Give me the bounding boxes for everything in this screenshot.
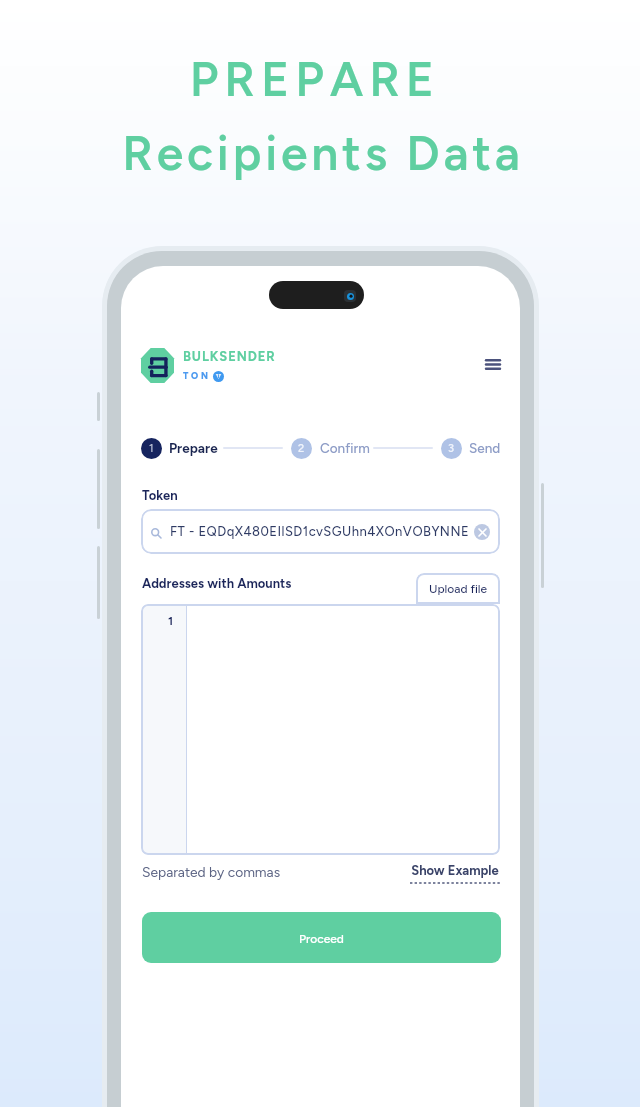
staticText: 1: [149, 442, 154, 455]
staticText: 3: [448, 442, 455, 455]
staticText: Send: [469, 440, 501, 456]
staticText: 2: [298, 442, 305, 455]
button[interactable]: Show Example: [410, 863, 500, 884]
staticText: Addresses with Amounts: [142, 576, 292, 592]
button[interactable]: FT - EQDqX480EIlSD1cvSGUhn4XOnVOBYNNE: [141, 509, 500, 554]
staticText: PREPARE: [0, 50, 635, 108]
button[interactable]: Upload file: [416, 573, 500, 604]
staticText: Recipients Data: [3, 124, 640, 182]
staticText: Upload file: [429, 582, 488, 596]
button[interactable]: 1: [141, 438, 162, 459]
staticText: FT - EQDqX480EIlSD1cvSGUhn4XOnVOBYNNE: [170, 524, 470, 540]
staticText: Separated by commas: [142, 864, 281, 881]
button[interactable]: 1: [141, 604, 500, 855]
button[interactable]: Clear: [474, 524, 490, 540]
button[interactable]: Menu: [472, 347, 514, 381]
staticText: 1: [168, 614, 174, 628]
staticText: TON: [183, 370, 211, 381]
staticText: BULKSENDER: [183, 349, 276, 365]
staticText: Token: [142, 488, 178, 504]
button[interactable]: 2: [291, 438, 312, 459]
button[interactable]: Proceed: [142, 912, 501, 963]
staticText: Proceed: [299, 932, 344, 946]
staticText: Show Example: [410, 863, 500, 879]
button[interactable]: 3: [441, 438, 462, 459]
staticText: Confirm: [320, 440, 370, 456]
staticText: Prepare: [169, 440, 218, 456]
